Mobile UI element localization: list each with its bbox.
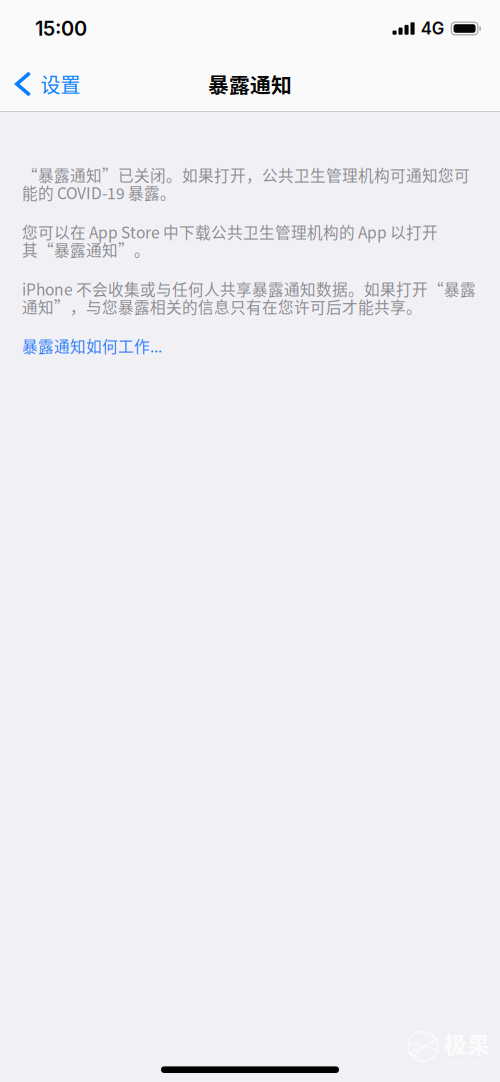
staticText: 极果 (444, 1027, 490, 1060)
staticText: 15:00 (35, 16, 87, 41)
staticText: iPhone 不会收集或与任何人共享暴露通知数据。如果打开“暴露通知”，与您暴露… (22, 280, 476, 315)
staticText: 设置 (40, 69, 80, 98)
button[interactable]: 设置 (0, 61, 92, 106)
staticText: 4G (421, 18, 444, 39)
button[interactable]: 暴露通知如何工作... (22, 337, 478, 355)
staticText: “暴露通知”已关闭。如果打开，公共卫生管理机构可通知您可能的 COVID-19 … (22, 166, 470, 201)
staticText: 暴露通知如何工作... (22, 337, 162, 355)
staticText: 您可以在 App Store 中下载公共卫生管理机构的 App 以打开其“暴露通… (22, 223, 438, 258)
staticText: 暴露通知 (208, 69, 292, 99)
